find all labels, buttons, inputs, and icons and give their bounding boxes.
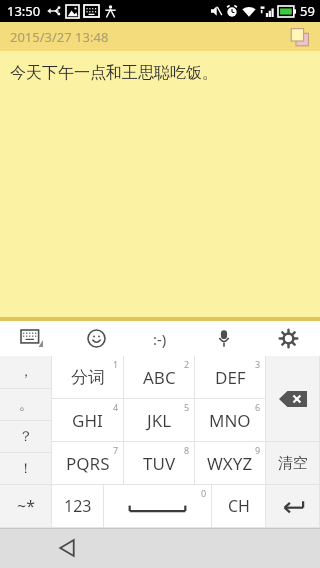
button[interactable]: 清空 [266,442,319,484]
button[interactable]: 。 [0,389,51,420]
staticText: 。 [19,396,33,414]
staticText: WXYZ [207,452,253,475]
button[interactable]: WXYZ [195,442,265,484]
button[interactable]: Backspace [266,356,319,441]
staticText: 清空 [278,454,308,473]
button[interactable]: Back [50,531,84,565]
staticText: 6 [255,401,261,413]
button[interactable]: JKL [124,399,194,441]
button[interactable]: Enter [266,485,319,527]
staticText: 9 [255,444,261,456]
staticText: 1 [113,358,119,370]
staticText: 2 [184,358,190,370]
staticText: GHI [72,409,103,432]
button[interactable]: TUV [124,442,194,484]
button[interactable]: 123 [52,485,103,527]
staticText: 分词 [71,367,105,388]
staticText: CH [228,495,250,517]
button[interactable]: 今天下午一点和王思聪吃饭。 [0,51,320,317]
staticText: PQRS [66,452,110,475]
staticText: ABC [143,366,176,389]
staticText: 8 [184,444,190,456]
button[interactable]: Voice input [192,321,256,356]
button[interactable]: Switch keyboard [0,321,64,356]
button[interactable]: MNO [195,399,265,441]
button[interactable]: Space [104,485,211,527]
button[interactable]: GHI [52,399,123,441]
staticText: :-) [153,329,167,349]
button[interactable]: ~* [0,485,51,527]
staticText: ~* [17,495,35,517]
button[interactable]: Settings [256,321,320,356]
staticText: DEF [215,366,246,389]
staticText: 2015/3/27 13:48 [10,28,109,46]
staticText: ！ [19,460,33,478]
staticText: 4 [113,401,119,413]
button[interactable]: CH [212,485,265,527]
staticText: 7 [113,444,119,456]
button[interactable]: 2015/3/27 13:48 [0,22,320,51]
staticText: TUV [143,452,176,475]
button[interactable]: ABC [124,356,194,398]
staticText: ， [19,363,33,381]
button[interactable]: 分词 [52,356,123,398]
button[interactable]: ？ [0,421,51,452]
staticText: 123 [64,495,92,517]
button[interactable]: Emoji [64,321,128,356]
staticText: MNO [209,409,251,432]
button[interactable]: Notes list [288,25,312,49]
staticText: 13:50 [7,2,41,20]
button[interactable]: PQRS [52,442,123,484]
button[interactable]: DEF [195,356,265,398]
button[interactable]: Emoticons [128,321,192,356]
staticText: 5 [184,401,190,413]
staticText: 今天下午一点和王思聪吃饭。 [10,63,218,83]
button[interactable]: ， [0,356,51,388]
staticText: JKL [147,409,172,432]
button[interactable]: ！ [0,453,51,484]
staticText: 0 [201,487,207,499]
staticText: 59 [300,2,315,20]
staticText: 3 [255,358,261,370]
staticText: ？ [19,428,33,446]
